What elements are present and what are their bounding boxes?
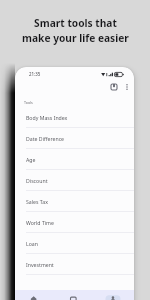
button[interactable]: Home [15,290,54,300]
staticText: Smart tools that [34,16,117,30]
staticText: 21:35 [29,71,41,77]
staticText: Date Difference [26,135,65,142]
button[interactable]: Discount [15,170,134,191]
staticText: Tools [24,100,33,105]
staticText: Discount [26,177,48,184]
button[interactable]: Age [15,149,134,170]
staticText: World Time [26,219,54,226]
staticText: Investment [26,261,54,268]
button[interactable]: Investment [15,254,134,275]
staticText: Age [26,156,36,163]
staticText: Body Mass Index [26,114,68,121]
button[interactable]: Sales Tax [15,191,134,212]
staticText: make your life easier [22,31,129,45]
button[interactable]: Body Mass Index [15,107,134,128]
button[interactable]: Profile [94,290,134,300]
button[interactable]: World Time [15,212,134,233]
button[interactable]: Loan [15,233,134,254]
button[interactable]: Date Difference [15,128,134,149]
button[interactable]: Tools [54,290,94,300]
button[interactable]: More options [121,81,133,93]
staticText: Sales Tax [26,198,48,205]
staticText: Loan [26,240,38,247]
button[interactable]: Saved [108,81,120,93]
